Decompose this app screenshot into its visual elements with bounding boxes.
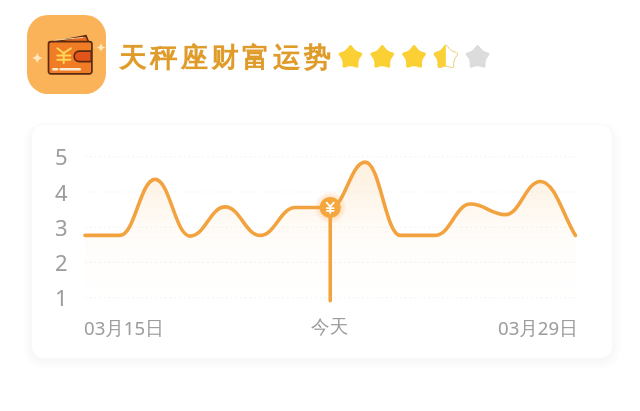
staticText: 4 xyxy=(55,177,68,205)
button[interactable]: 1 xyxy=(32,125,612,358)
staticText: 1 xyxy=(55,282,68,310)
button[interactable]: 天秤座财富运势 xyxy=(119,41,334,78)
staticText: 3 xyxy=(55,212,68,240)
staticText: 天秤座财富运势 xyxy=(119,41,334,75)
staticText: 03月15日 xyxy=(84,315,164,340)
button[interactable]: Rating 3.5 of 5 stars xyxy=(336,41,491,71)
button[interactable]: Wallet fortune xyxy=(27,15,106,94)
staticText: 5 xyxy=(55,141,68,169)
staticText: 今天 xyxy=(311,315,349,338)
staticText: 03月29日 xyxy=(498,315,578,340)
staticText: 2 xyxy=(55,247,68,275)
